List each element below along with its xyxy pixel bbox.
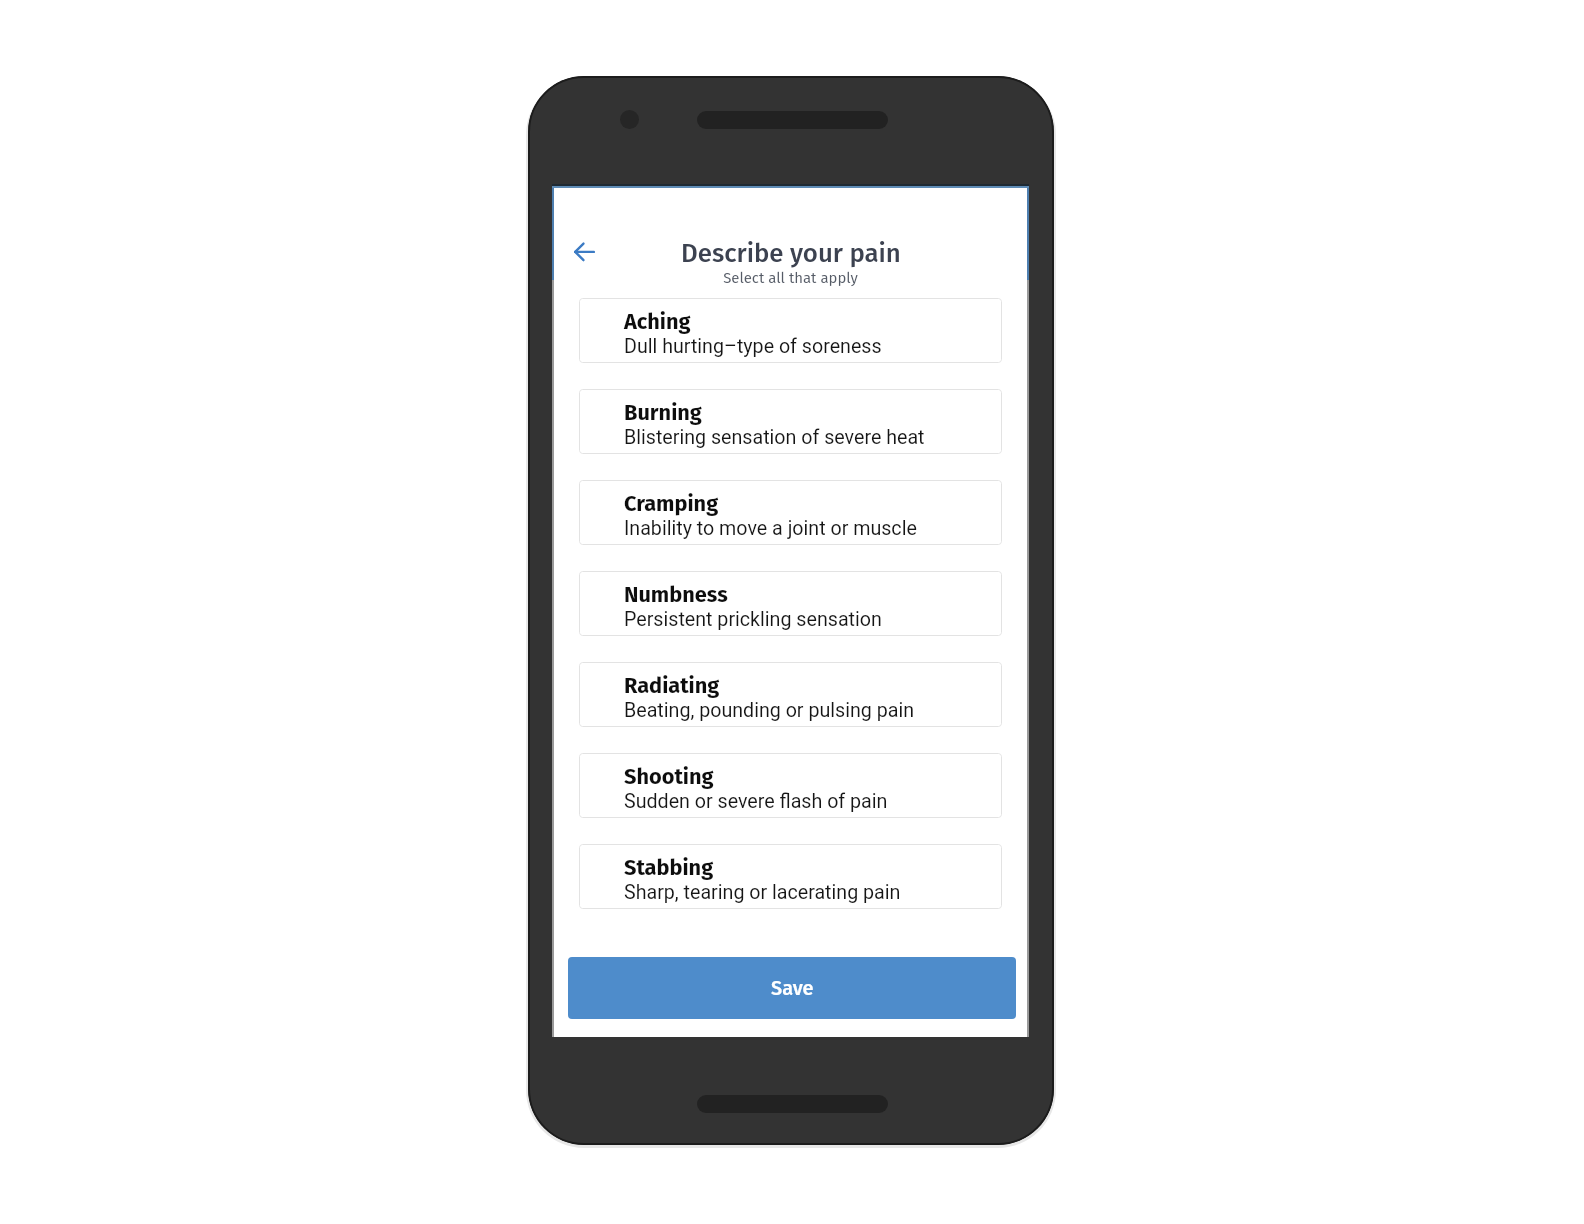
button[interactable]: Aching: [579, 298, 1002, 363]
button[interactable]: Radiating: [579, 662, 1002, 727]
staticText: Inability to move a joint or muscle: [624, 517, 917, 540]
button[interactable]: Numbness: [579, 571, 1002, 636]
staticText: Describe your pain: [681, 238, 901, 269]
staticText: Beating, pounding or pulsing pain: [624, 699, 915, 722]
staticText: Select all that apply: [552, 269, 1029, 287]
button[interactable]: Burning: [579, 389, 1002, 454]
button[interactable]: Stabbing: [579, 844, 1002, 909]
staticText: Radiating: [624, 673, 720, 699]
staticText: Dull hurting–type of soreness: [624, 335, 882, 358]
staticText: Sharp, tearing or lacerating pain: [624, 881, 901, 904]
staticText: Numbness: [624, 582, 728, 608]
staticText: Aching: [624, 309, 691, 335]
button[interactable]: Back: [563, 232, 603, 272]
staticText: Sudden or severe flash of pain: [624, 790, 888, 813]
staticText: Save: [771, 976, 814, 1000]
staticText: Stabbing: [624, 855, 714, 881]
staticText: Shooting: [624, 764, 714, 790]
button[interactable]: Cramping: [579, 480, 1002, 545]
staticText: Blistering sensation of severe heat: [624, 426, 925, 449]
staticText: Burning: [624, 400, 702, 426]
button[interactable]: Shooting: [579, 753, 1002, 818]
staticText: Cramping: [624, 491, 719, 517]
staticText: Persistent prickling sensation: [624, 608, 882, 631]
button[interactable]: Save: [568, 957, 1016, 1019]
